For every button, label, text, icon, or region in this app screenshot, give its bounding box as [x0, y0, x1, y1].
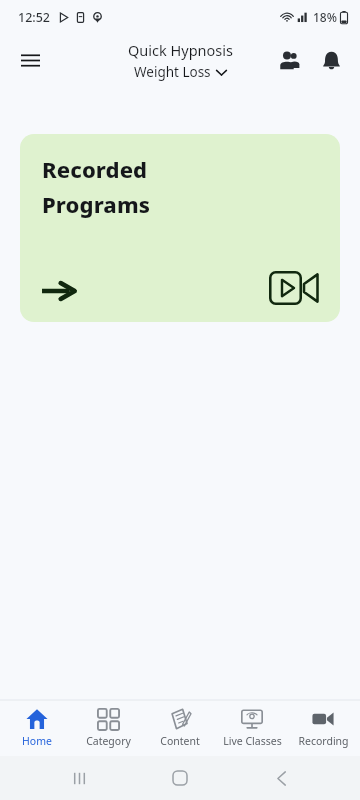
button[interactable]: Home — [158, 756, 202, 800]
button[interactable]: Weight Loss — [134, 63, 227, 81]
staticText: 18% — [313, 9, 337, 25]
staticText: Programs — [42, 189, 150, 219]
button[interactable]: Recorded — [20, 134, 340, 322]
button[interactable]: Content — [145, 702, 215, 754]
staticText: Content — [160, 734, 200, 748]
button[interactable]: Recording — [288, 702, 358, 754]
button[interactable]: Live Classes — [217, 702, 287, 754]
button[interactable]: Recent apps — [57, 756, 101, 800]
button[interactable]: Back — [259, 756, 303, 800]
staticText: Recorded — [42, 154, 148, 184]
staticText: 12:52 — [18, 9, 51, 26]
staticText: Category — [86, 734, 131, 748]
button[interactable]: Category — [73, 702, 143, 754]
staticText: Home — [22, 734, 52, 748]
staticText: Weight Loss — [134, 63, 211, 81]
staticText: Live Classes — [223, 734, 282, 748]
staticText: Quick Hypnosis — [128, 40, 233, 60]
button[interactable]: Menu — [8, 38, 52, 82]
button[interactable]: Community — [268, 39, 310, 81]
staticText: Recording — [298, 734, 349, 748]
button[interactable]: Home — [2, 702, 72, 754]
button[interactable]: Notifications — [310, 39, 352, 81]
button[interactable]: Open recorded programs — [38, 278, 78, 304]
